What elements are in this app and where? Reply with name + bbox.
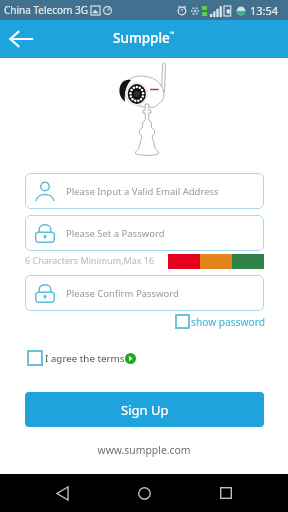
button[interactable]: Please Set a Password [25, 215, 264, 251]
staticText: Please Confirm Password [66, 287, 179, 300]
button[interactable]: Recents [207, 474, 245, 512]
staticText: Please Input a Valid Email Address [66, 185, 219, 198]
button[interactable]: Home [125, 474, 163, 512]
button[interactable]: show password [175, 314, 265, 329]
button[interactable]: Please Confirm Password [25, 275, 264, 311]
staticText: 6 Characters Minimum,Max 16 [25, 254, 155, 266]
staticText: ™ [170, 30, 175, 38]
staticText: Please Set a Password [66, 227, 165, 240]
staticText: Sumpple [113, 29, 170, 47]
staticText: show password [191, 315, 265, 329]
staticText: 13:54 [250, 3, 279, 18]
staticText: I agree the terms [45, 352, 125, 365]
staticText: www.sumpple.com [97, 443, 191, 457]
button[interactable]: Sign Up [25, 392, 264, 427]
button[interactable]: I agree the terms [27, 350, 136, 366]
staticText: Sign Up [121, 401, 169, 419]
button[interactable]: Back [44, 474, 82, 512]
button[interactable]: Back [3, 21, 39, 57]
staticText: China Telecom 3G [4, 3, 88, 17]
button[interactable]: Please Input a Valid Email Address [25, 173, 264, 209]
